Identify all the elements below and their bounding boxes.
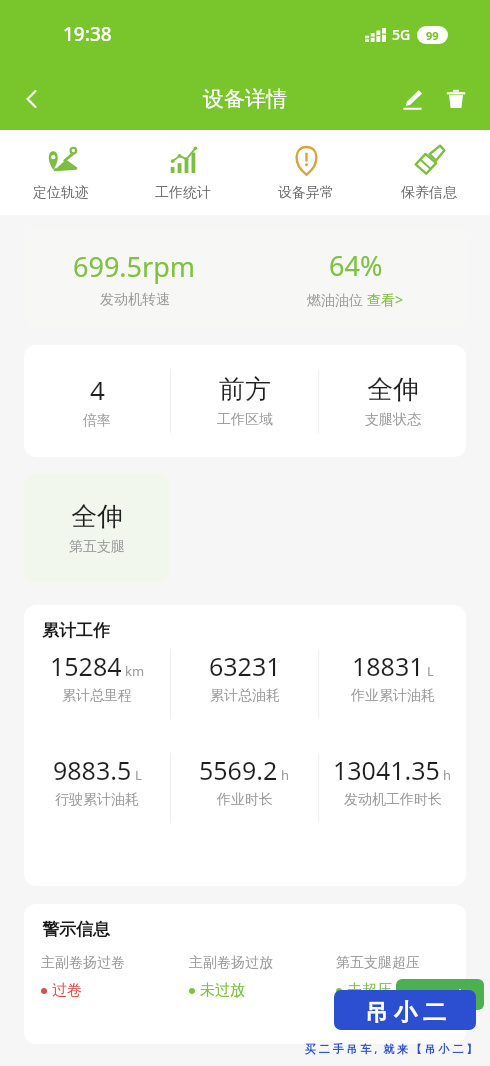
- staticText: 5G: [392, 25, 411, 44]
- staticText: 5569.2: [199, 753, 278, 787]
- staticText: 支腿状态: [365, 411, 421, 429]
- staticText: 警示信息: [42, 919, 110, 940]
- button[interactable]: 主副卷扬过卷: [24, 954, 172, 1000]
- staticText: 发动机转速: [100, 291, 170, 309]
- staticText: h: [443, 766, 452, 784]
- button[interactable]: 15284: [24, 649, 170, 705]
- button[interactable]: 4: [24, 372, 170, 430]
- button[interactable]: Back: [10, 77, 54, 121]
- staticText: 第五支腿超压: [336, 954, 420, 972]
- staticText: 主副卷扬过卷: [41, 954, 125, 972]
- staticText: 发动机工作时长: [344, 791, 442, 809]
- staticText: L: [135, 766, 142, 784]
- staticText: 作业时长: [217, 791, 273, 809]
- button[interactable]: 设备异常: [244, 138, 367, 205]
- staticText: L: [427, 662, 434, 680]
- button[interactable]: 保养信息: [367, 138, 490, 205]
- staticText: 累计工作: [42, 620, 110, 641]
- button[interactable]: 5569.2: [171, 753, 318, 809]
- staticText: 699.5rpm: [73, 248, 196, 285]
- staticText: 工作统计: [155, 184, 211, 202]
- staticText: km: [125, 662, 145, 680]
- staticText: 累计总里程: [62, 687, 132, 705]
- staticText: 定位轨迹: [33, 184, 89, 202]
- button[interactable]: 13041.35: [319, 753, 466, 809]
- staticText: 前方: [219, 373, 271, 406]
- staticText: 吊 小 二: [365, 995, 446, 1026]
- staticText: 18831: [352, 649, 424, 683]
- staticText: 全伸: [71, 500, 123, 533]
- staticText: 买 二 手 吊 车 , 就 来 【 吊 小 二 】: [305, 1041, 478, 1056]
- button[interactable]: 63231: [171, 649, 318, 705]
- button[interactable]: 工作统计: [122, 138, 244, 205]
- staticText: 查看>: [367, 290, 404, 309]
- staticText: 第五支腿: [69, 538, 125, 556]
- staticText: 保养信息: [401, 184, 457, 202]
- button[interactable]: 全伸: [319, 373, 466, 429]
- staticText: 63231: [209, 649, 281, 683]
- staticText: 未过放: [200, 981, 245, 1000]
- staticText: 设备详情: [203, 86, 287, 112]
- staticText: 燃油油位: [307, 290, 367, 309]
- button[interactable]: 前方: [171, 373, 318, 429]
- staticText: 全伸: [367, 373, 419, 406]
- button[interactable]: 吊 小 二: [334, 990, 476, 1030]
- staticText: 行驶累计油耗: [55, 791, 139, 809]
- staticText: 主副卷扬过放: [189, 954, 273, 972]
- button[interactable]: 定位轨迹: [0, 138, 122, 205]
- staticText: vConsole: [410, 985, 470, 1004]
- staticText: 累计总油耗: [210, 687, 280, 705]
- staticText: 未超压: [347, 981, 392, 1000]
- button[interactable]: 燃油油位: [307, 290, 404, 309]
- staticText: 4: [90, 372, 105, 407]
- staticText: 64%: [329, 247, 383, 284]
- button[interactable]: 全伸: [24, 473, 170, 583]
- staticText: 工作区域: [217, 411, 273, 429]
- staticText: 作业累计油耗: [351, 687, 435, 705]
- button[interactable]: Delete: [434, 77, 478, 121]
- staticText: 19:38: [63, 21, 112, 47]
- staticText: 设备异常: [278, 184, 334, 202]
- staticText: 13041.35: [333, 753, 440, 787]
- button[interactable]: 9883.5: [24, 753, 170, 809]
- button[interactable]: 主副卷扬过放: [172, 954, 319, 1000]
- staticText: h: [281, 766, 290, 784]
- button[interactable]: 第五支腿超压: [319, 954, 466, 1000]
- button[interactable]: 18831: [319, 649, 466, 705]
- staticText: 过卷: [52, 981, 82, 1000]
- button[interactable]: Edit: [390, 77, 434, 121]
- staticText: 9883.5: [53, 753, 132, 787]
- button[interactable]: vConsole: [396, 979, 484, 1010]
- staticText: 15284: [50, 649, 122, 683]
- staticText: 99: [426, 28, 439, 43]
- staticText: 倍率: [83, 412, 111, 430]
